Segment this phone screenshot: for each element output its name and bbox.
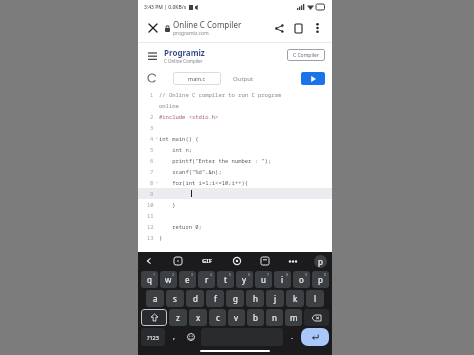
staticText: o [299, 274, 304, 285]
button[interactable]: Gboard [314, 255, 327, 268]
button[interactable]: a [146, 290, 164, 307]
button[interactable]: Refresh [145, 71, 159, 85]
button[interactable]: j [266, 290, 284, 307]
button[interactable]: Backspace [304, 309, 329, 326]
button[interactable]: Share [271, 20, 287, 36]
button[interactable]: More [288, 256, 298, 266]
button[interactable]: Output [229, 72, 258, 85]
staticText: 2 [172, 272, 175, 277]
button[interactable]: Comma [166, 328, 182, 346]
button[interactable]: Bookmark [290, 20, 306, 36]
button[interactable]: Shift [141, 309, 167, 326]
button[interactable]: o [293, 271, 310, 288]
staticText: p [318, 256, 323, 267]
button[interactable]: p [312, 271, 329, 288]
staticText: t [224, 274, 227, 285]
staticText: , [173, 332, 175, 342]
button[interactable]: f [206, 290, 224, 307]
button[interactable]: b [247, 309, 264, 326]
staticText: 7 [150, 168, 154, 175]
staticText: w [165, 274, 172, 285]
staticText: C Online Compiler [164, 58, 203, 64]
staticText: s [173, 293, 177, 304]
staticText: m [290, 312, 298, 323]
staticText: a [153, 293, 158, 304]
button[interactable]: c [209, 309, 226, 326]
staticText: for(int i=1;i<=10;i++){ [159, 179, 249, 186]
staticText: r [205, 274, 209, 285]
button[interactable]: Back [143, 255, 155, 267]
button[interactable]: Enter [301, 328, 329, 346]
staticText: ?123 [147, 334, 159, 341]
staticText: 9 [305, 272, 308, 277]
button[interactable]: k [286, 290, 304, 307]
staticText: C Compiler [293, 52, 319, 59]
button[interactable]: g [226, 290, 244, 307]
button[interactable]: i [274, 271, 291, 288]
staticText: 6 [150, 157, 154, 164]
staticText: #include <stdio.h> [159, 113, 219, 120]
button[interactable]: main.c [173, 72, 221, 85]
button[interactable]: m [285, 309, 302, 326]
staticText: } [159, 234, 163, 241]
button[interactable]: More options [309, 20, 325, 36]
staticText: 13 [147, 234, 154, 241]
button[interactable]: ?123 [141, 328, 165, 346]
staticText: f [214, 293, 217, 304]
button[interactable]: d [186, 290, 204, 307]
button[interactable]: Run [301, 72, 325, 85]
button[interactable]: z [169, 309, 187, 326]
staticText: k [293, 293, 298, 304]
button[interactable]: v [228, 309, 245, 326]
button[interactable]: C Compiler [287, 49, 325, 61]
button[interactable]: l [306, 290, 324, 307]
button[interactable]: Menu [145, 48, 159, 62]
button[interactable]: w [160, 271, 177, 288]
button[interactable]: q [141, 271, 158, 288]
staticText: GIF [202, 257, 212, 265]
button[interactable]: Stickers [172, 255, 184, 267]
staticText: 8 [150, 179, 154, 186]
staticText: h [253, 293, 258, 304]
button[interactable]: Settings [231, 255, 243, 267]
staticText: p [318, 274, 323, 285]
staticText: 4 [210, 272, 213, 277]
button[interactable]: GIF [200, 255, 214, 267]
staticText: 3 [191, 272, 194, 277]
staticText: i [281, 274, 284, 285]
staticText: 3:43 PM | 0.0KB/s [144, 4, 187, 11]
staticText: n [272, 312, 277, 323]
staticText: e [185, 274, 190, 285]
staticText: programiz.com [173, 30, 209, 37]
button[interactable]: h [246, 290, 264, 307]
staticText: q [147, 274, 152, 285]
staticText: l [314, 293, 317, 304]
button[interactable]: x [189, 309, 207, 326]
staticText: 2 [150, 113, 154, 120]
button[interactable]: Translate [259, 255, 271, 267]
staticText: c [216, 312, 220, 323]
staticText: d [193, 293, 198, 304]
staticText: j [274, 293, 277, 304]
button[interactable]: e [179, 271, 196, 288]
button[interactable]: t [217, 271, 234, 288]
button[interactable]: r [198, 271, 215, 288]
staticText: 8 [286, 272, 289, 277]
staticText: . [291, 332, 293, 342]
button[interactable]: Emoji [182, 328, 200, 346]
button[interactable]: s [166, 290, 184, 307]
button[interactable]: Close [145, 20, 161, 36]
staticText: - [156, 179, 158, 186]
staticText: g [233, 293, 238, 304]
staticText: // Online C compiler to run C program [159, 91, 282, 98]
button[interactable]: u [255, 271, 272, 288]
staticText: 9 [150, 190, 154, 197]
staticText: 5 [150, 146, 154, 153]
button[interactable]: n [266, 309, 283, 326]
button[interactable]: Period [284, 328, 300, 346]
staticText: int n; [159, 146, 193, 153]
staticText: 0 [324, 272, 327, 277]
staticText: 7 [267, 272, 270, 277]
button[interactable]: y [236, 271, 253, 288]
